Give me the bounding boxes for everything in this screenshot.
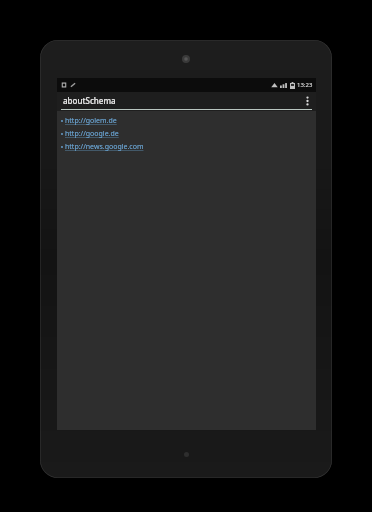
- button[interactable]: More options: [300, 92, 314, 109]
- button[interactable]: http://news.google.com: [57, 140, 316, 153]
- staticText: http://golem.de: [65, 116, 117, 126]
- staticText: http://google.de: [65, 129, 119, 139]
- button[interactable]: http://google.de: [57, 127, 316, 140]
- staticText: aboutSchema: [63, 95, 300, 106]
- staticText: 13:23: [297, 81, 313, 89]
- staticText: http://news.google.com: [65, 142, 144, 152]
- button[interactable]: http://golem.de: [57, 114, 316, 127]
